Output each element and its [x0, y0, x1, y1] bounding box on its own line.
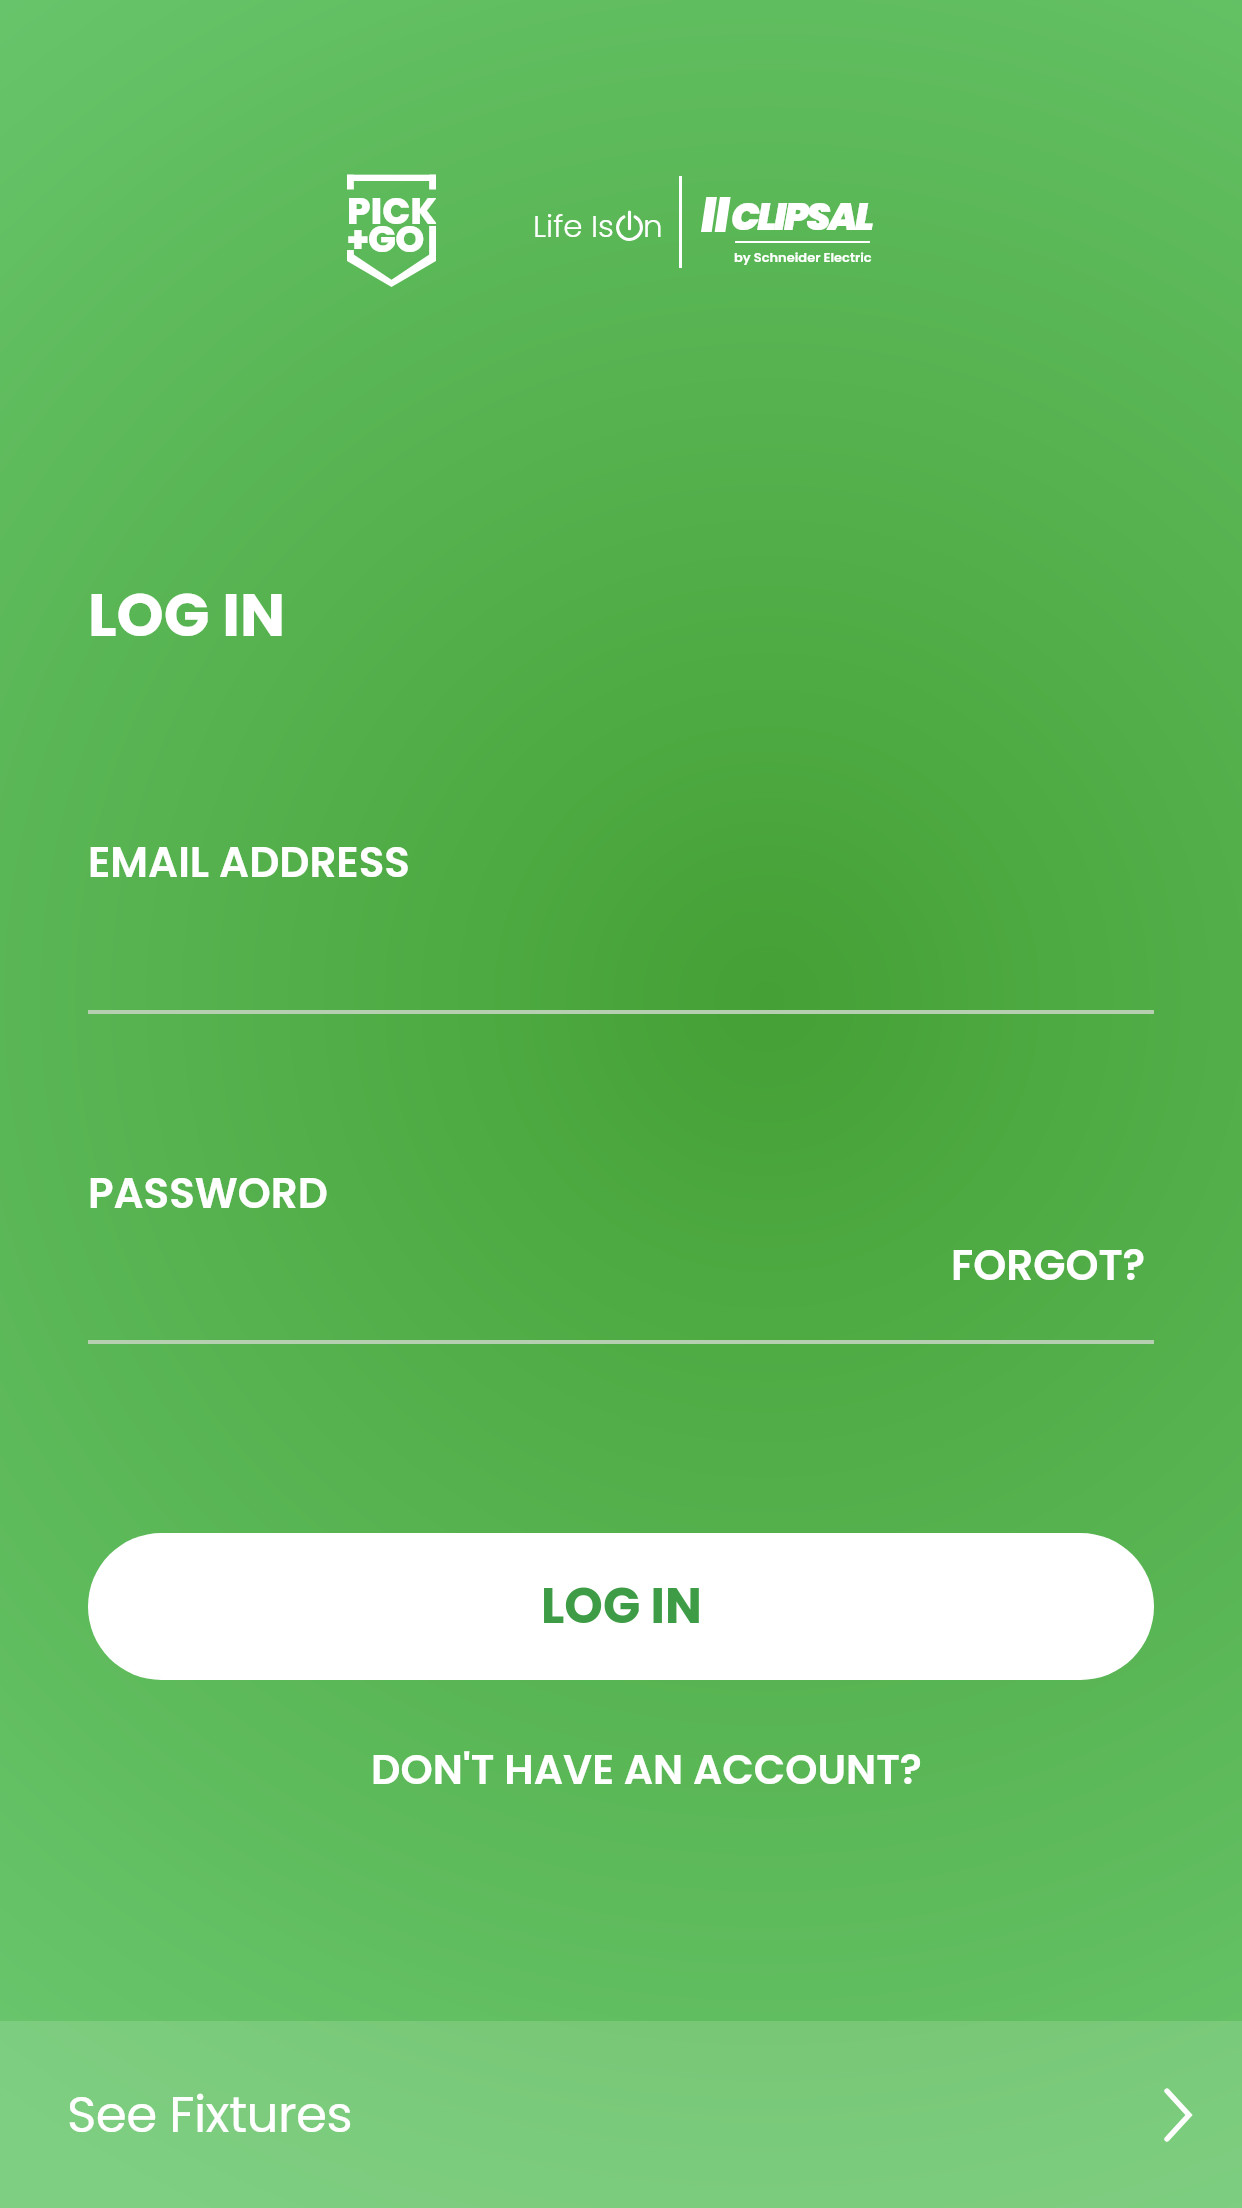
staticText: PICK — [347, 185, 436, 237]
staticText: LOG IN — [541, 1572, 702, 1641]
button[interactable]: DON'T HAVE AN ACCOUNT? — [113, 1741, 1179, 1798]
staticText: by Schneider Electric — [734, 248, 872, 266]
staticText: PASSWORD — [88, 1164, 328, 1223]
button[interactable]: LOG IN — [88, 1533, 1154, 1680]
staticText: EMAIL ADDRESS — [88, 833, 410, 892]
other: See Fixtures — [1164, 2088, 1192, 2142]
button[interactable]: FORGOT? — [951, 1236, 1146, 1295]
staticText: LOG IN — [88, 573, 286, 657]
staticText: Life Is — [533, 204, 614, 247]
staticText: FORGOT? — [951, 1236, 1146, 1295]
staticText: See Fixtures — [67, 2080, 352, 2150]
button[interactable]: See Fixtures — [0, 2021, 1242, 2208]
staticText: n — [643, 204, 663, 247]
staticText: CLIPSAL — [731, 190, 872, 243]
staticText: +GO — [347, 213, 424, 265]
staticText: DON'T HAVE AN ACCOUNT? — [371, 1741, 922, 1798]
